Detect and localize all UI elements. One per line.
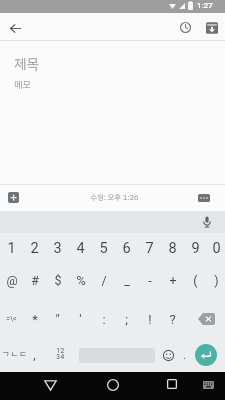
button[interactable]: 8 [161,233,184,264]
button[interactable] [184,304,225,334]
staticText: =\< [6,315,17,323]
staticText: - [148,273,152,288]
button[interactable]: ; [115,304,138,334]
button[interactable]: : [92,304,115,334]
button[interactable]: / [92,264,115,296]
staticText: $ [54,273,62,288]
staticText: 2 [30,240,39,257]
staticText: ( [193,273,198,288]
staticText: % [76,273,86,288]
button[interactable]: ' [69,304,92,334]
button[interactable]: 7 [138,233,161,264]
button[interactable] [198,193,210,202]
staticText: + [169,273,177,288]
button[interactable] [166,378,178,390]
staticText: , [33,348,36,362]
button[interactable] [202,380,215,390]
staticText: ' [79,312,82,327]
staticText: @ [6,273,18,288]
button[interactable]: + [161,264,184,296]
staticText: 3 [53,240,62,257]
button[interactable]: ? [161,304,184,334]
staticText: * [32,312,38,327]
button[interactable]: =\< [0,304,23,334]
staticText: 4 [76,240,85,257]
button[interactable]: 1 [0,233,23,264]
staticText: 8 [168,240,177,257]
staticText: / [101,273,107,288]
button[interactable] [179,21,191,33]
button[interactable] [161,348,176,363]
staticText: . [183,349,186,362]
button[interactable]: 9 [184,233,207,264]
button[interactable]: ) [207,264,225,296]
staticText: 0 [212,240,221,257]
staticText: ㄱㄴㄷ [2,348,28,361]
button[interactable]: @ [0,264,23,296]
staticText: 제목 [14,54,39,75]
staticText: : [102,312,106,327]
button[interactable]: % [69,264,92,296]
button[interactable] [106,378,119,391]
staticText: ! [148,312,152,327]
button[interactable]: # [23,264,46,296]
button[interactable] [8,192,19,203]
button[interactable]: 4 [69,233,92,264]
button[interactable]: ( [184,264,207,296]
button[interactable]: 0 [207,233,225,264]
button[interactable]: 3 [46,233,69,264]
button[interactable]: 12 34 [49,337,72,373]
button[interactable] [9,22,22,35]
button[interactable]: * [23,304,46,334]
staticText: 9 [191,240,200,257]
staticText: 1 [7,240,16,257]
button[interactable]: _ [115,264,138,296]
staticText: 6 [122,240,131,257]
staticText: _ [124,273,130,288]
staticText: 1:27 [197,1,213,10]
staticText: ? [169,312,176,327]
staticText: 5 [99,240,108,257]
button[interactable]: ! [138,304,161,334]
button[interactable] [43,378,57,392]
button[interactable] [195,344,217,366]
button[interactable]: " [46,304,69,334]
button[interactable]: - [138,264,161,296]
button[interactable]: $ [46,264,69,296]
staticText: ) [214,273,219,288]
staticText: ; [125,312,128,327]
staticText: # [31,273,39,288]
staticText: 12 34 [56,347,65,360]
staticText: 메모 [14,78,31,92]
button[interactable]: 2 [23,233,46,264]
button[interactable]: , [23,337,46,373]
staticText: " [55,312,60,327]
button[interactable]: 5 [92,233,115,264]
button[interactable]: ㄱㄴㄷ [0,337,30,373]
button[interactable] [201,216,213,228]
button[interactable] [206,22,218,34]
staticText: 수정: 오후 1:26 [90,192,139,203]
staticText: 7 [145,240,154,257]
button[interactable]: 6 [115,233,138,264]
button[interactable]: . [178,349,191,362]
